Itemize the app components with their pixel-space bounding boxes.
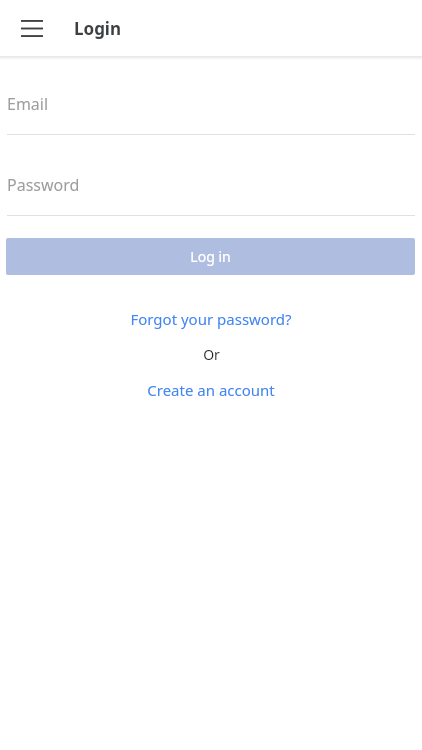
staticText: Log in: [190, 247, 231, 266]
staticText: Password: [7, 174, 80, 196]
staticText: Create an account: [147, 380, 275, 400]
button[interactable]: Password: [0, 174, 422, 216]
staticText: Or: [203, 345, 220, 364]
staticText: Email: [7, 93, 49, 115]
button[interactable]: Create an account: [0, 380, 422, 400]
button[interactable]: Email: [0, 93, 422, 135]
button[interactable]: Open navigation menu: [10, 6, 54, 50]
staticText: Login: [74, 17, 122, 40]
staticText: Forgot your password?: [130, 309, 292, 329]
button[interactable]: Forgot your password?: [0, 309, 422, 329]
button[interactable]: Log in: [6, 238, 415, 275]
